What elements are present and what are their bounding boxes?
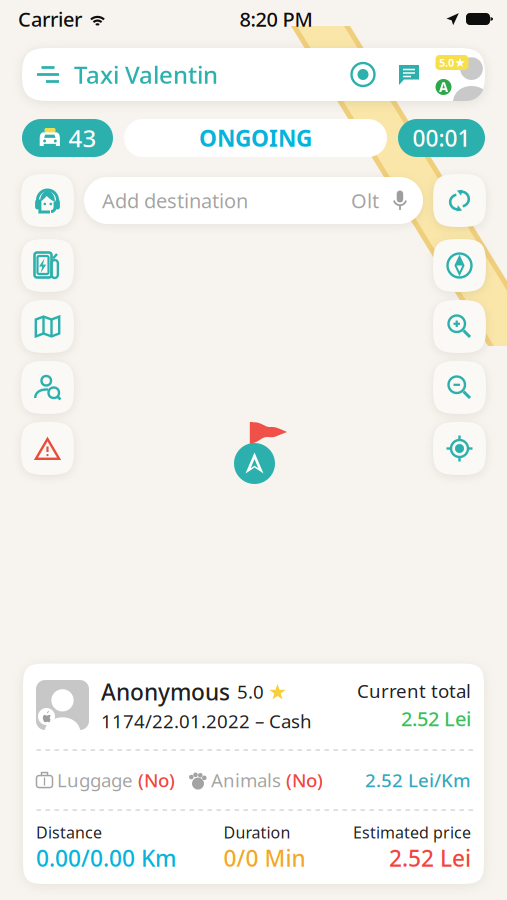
staticText: ONGOING [199, 123, 312, 153]
button[interactable]: Add destination [84, 177, 423, 224]
staticText: 0/0 Min [223, 843, 305, 873]
staticText: 00:01 [412, 123, 470, 153]
staticText: 2.52 Lei/Km [365, 768, 471, 792]
button[interactable]: Support [21, 174, 74, 227]
staticText: 8:20 PM [239, 6, 312, 32]
button[interactable]: Zoom in [433, 300, 486, 353]
staticText: Current total [357, 678, 471, 703]
button[interactable]: Alerts [21, 422, 74, 475]
button[interactable]: Menu [22, 48, 74, 101]
staticText: Add destination [102, 187, 248, 214]
staticText: 1174/22.01.2022 – Cash [101, 709, 312, 733]
staticText: Distance [36, 822, 102, 843]
button[interactable]: Zoom out [433, 361, 486, 414]
staticText: Duration [223, 822, 290, 843]
staticText: (No) [138, 768, 175, 792]
button[interactable]: 43 [22, 119, 113, 157]
staticText: 0.00/0.00 Km [36, 843, 176, 873]
staticText: (No) [286, 768, 323, 792]
staticText: Olt [351, 187, 379, 214]
button[interactable]: Find passenger [21, 361, 74, 414]
staticText: 5.0 [237, 679, 264, 704]
staticText: 5.0 [439, 55, 454, 70]
staticText: Estimated price [353, 822, 471, 843]
staticText: 43 [68, 122, 96, 154]
button[interactable]: My location [433, 422, 486, 475]
staticText: A [439, 78, 448, 96]
button[interactable]: Compass [433, 239, 486, 292]
button[interactable]: Refresh [433, 174, 486, 227]
button[interactable]: Profile [432, 48, 485, 101]
staticText: Luggage [57, 768, 133, 792]
button[interactable]: Record [340, 48, 386, 101]
button[interactable]: ONGOING [124, 119, 387, 157]
button[interactable]: Map [21, 300, 74, 353]
button[interactable]: Messages [386, 48, 432, 101]
staticText: 2.52 Lei [389, 843, 471, 873]
staticText: Animals [211, 768, 281, 792]
staticText: 2.52 Lei [401, 705, 471, 732]
staticText: Carrier [18, 6, 82, 32]
button[interactable]: Fuel [21, 239, 74, 292]
staticText: Anonymous [101, 677, 230, 707]
staticText: Taxi Valentin [74, 59, 218, 90]
